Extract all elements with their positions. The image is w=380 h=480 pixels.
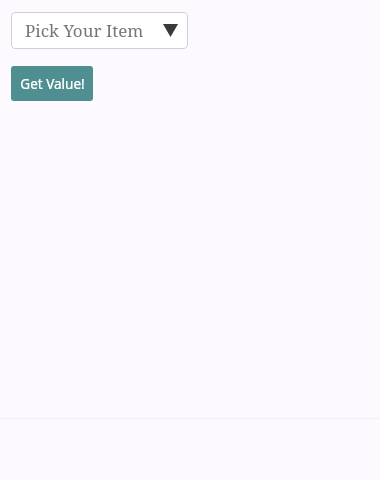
button[interactable]: Pick Your Item <box>11 12 188 49</box>
button[interactable]: Get Value! <box>11 66 93 101</box>
staticText: Pick Your Item <box>25 19 144 42</box>
other: Open dropdown <box>163 24 178 37</box>
staticText: Get Value! <box>20 75 85 93</box>
